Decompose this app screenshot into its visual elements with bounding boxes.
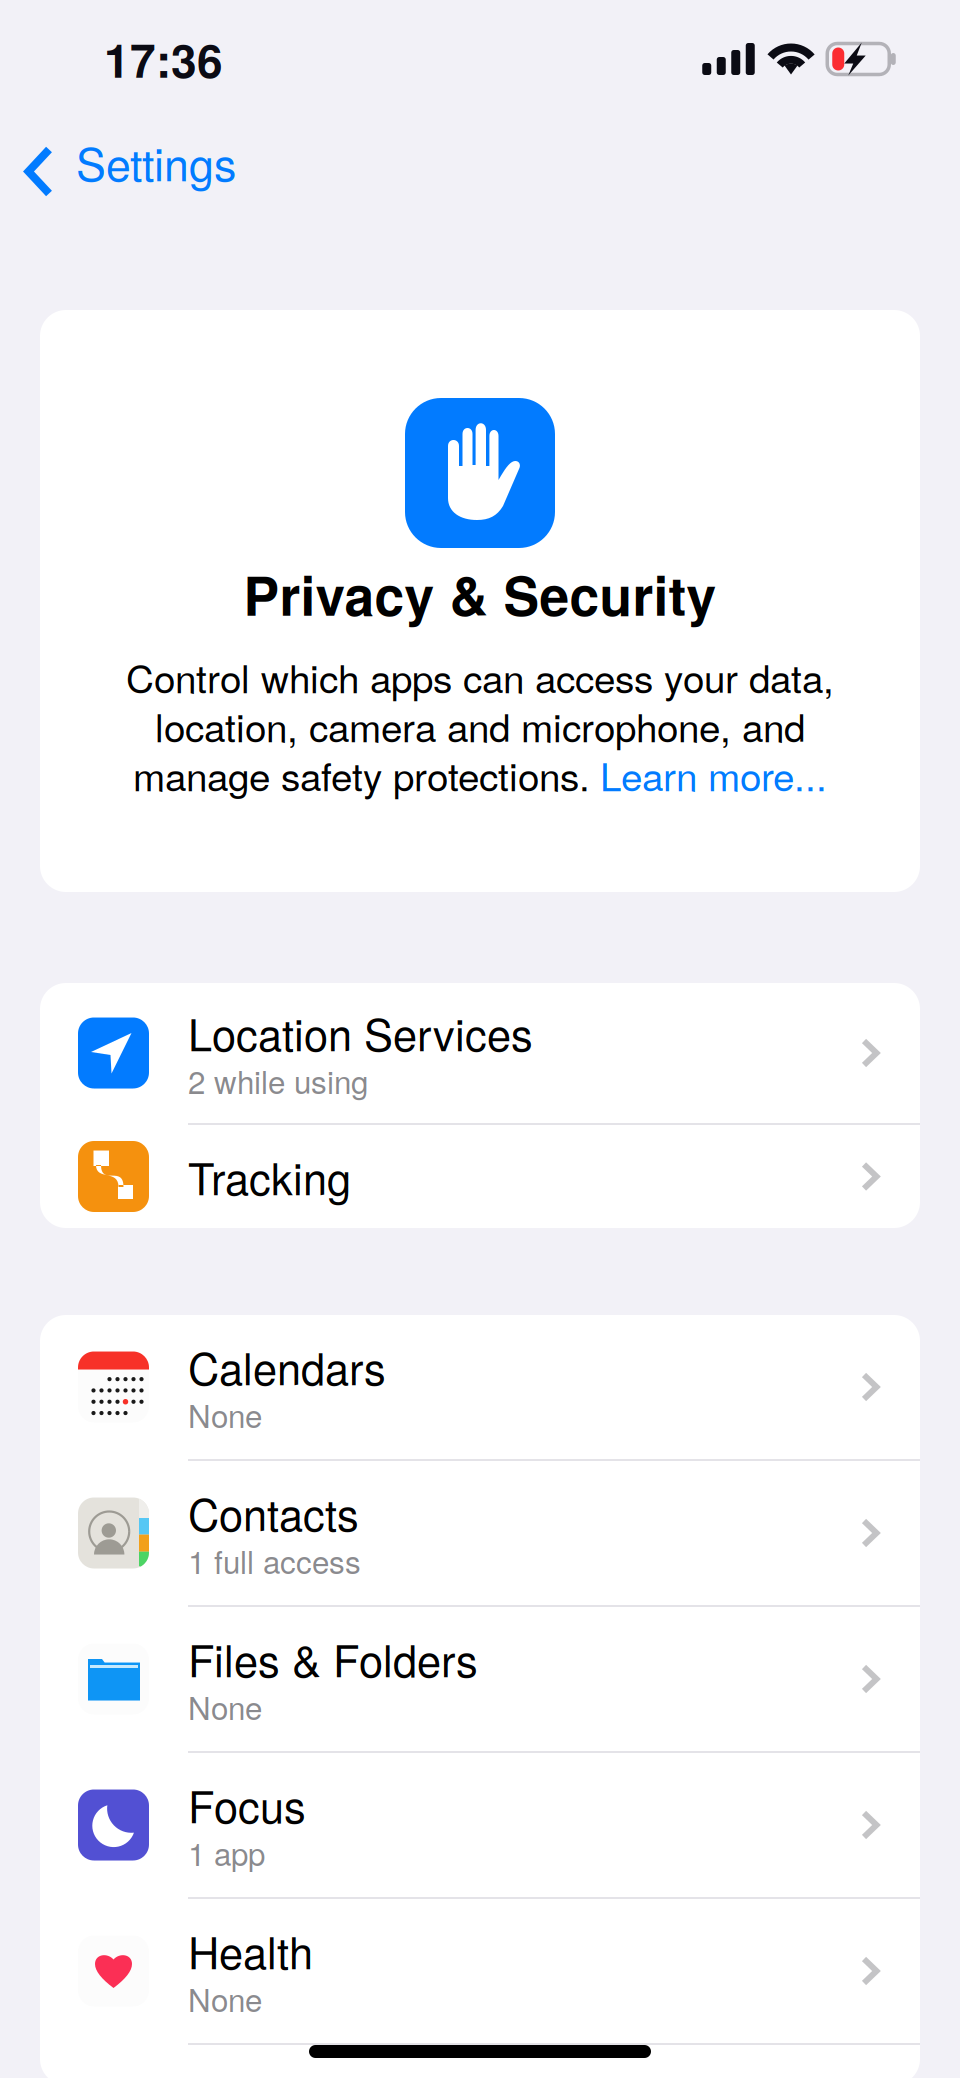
staticText: location, camera and microphone, and bbox=[155, 698, 805, 753]
button[interactable]: Tracking bbox=[40, 1125, 920, 1228]
staticText: None bbox=[188, 1976, 262, 2021]
staticText: 17:36 bbox=[104, 26, 223, 92]
staticText: Tracking bbox=[188, 1145, 351, 1208]
staticText: Privacy & Security bbox=[243, 556, 716, 632]
staticText: 1 full access bbox=[188, 1538, 361, 1583]
staticText: Focus bbox=[188, 1773, 306, 1836]
button[interactable]: Files & Folders bbox=[40, 1607, 920, 1751]
staticText: Calendars bbox=[188, 1335, 386, 1398]
staticText: None bbox=[188, 1684, 262, 1729]
staticText: Control which apps can access your data, bbox=[126, 649, 834, 704]
staticText: Files & Folders bbox=[188, 1627, 478, 1690]
button[interactable]: Contacts bbox=[40, 1461, 920, 1605]
button[interactable]: Settings bbox=[0, 118, 236, 200]
staticText: None bbox=[188, 1392, 262, 1437]
button[interactable]: Focus bbox=[40, 1753, 920, 1897]
staticText: 1 app bbox=[188, 1830, 265, 1875]
staticText: Settings bbox=[76, 130, 236, 194]
staticText: Health bbox=[188, 1919, 313, 1982]
staticText: 2 while using bbox=[188, 1058, 368, 1103]
staticText: manage safety protections. bbox=[133, 747, 590, 802]
staticText: Learn more... bbox=[600, 747, 827, 802]
staticText: Contacts bbox=[188, 1481, 359, 1544]
button[interactable]: Location Services bbox=[40, 983, 920, 1123]
button[interactable]: Calendars bbox=[40, 1315, 920, 1459]
button[interactable]: Health bbox=[40, 1899, 920, 2043]
button[interactable]: Learn more... bbox=[590, 747, 827, 802]
staticText: Location Services bbox=[188, 1001, 533, 1064]
